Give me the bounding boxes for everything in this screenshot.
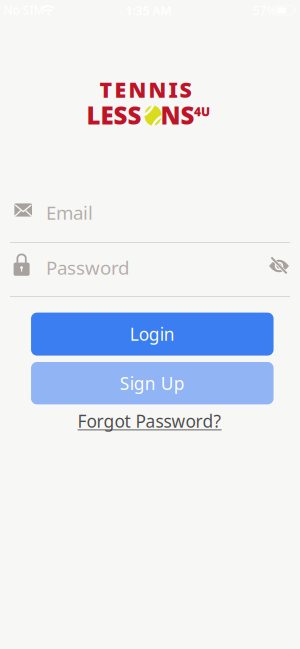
button[interactable]: [261, 248, 297, 284]
button[interactable]: Password: [0, 242, 260, 286]
button[interactable]: Login: [31, 313, 274, 356]
staticText: 4U: [194, 103, 210, 119]
button[interactable]: Forgot Password?: [78, 409, 222, 432]
staticText: LESS: [86, 99, 141, 131]
staticText: Email: [46, 200, 93, 225]
staticText: Forgot Password?: [78, 409, 222, 432]
staticText: Password: [46, 255, 129, 280]
button[interactable]: Sign Up: [31, 362, 274, 404]
button[interactable]: Email: [0, 190, 300, 230]
staticText: T E N N I S: [100, 75, 192, 104]
staticText: NS: [160, 99, 194, 131]
staticText: Sign Up: [120, 372, 185, 395]
staticText: Login: [130, 323, 175, 346]
